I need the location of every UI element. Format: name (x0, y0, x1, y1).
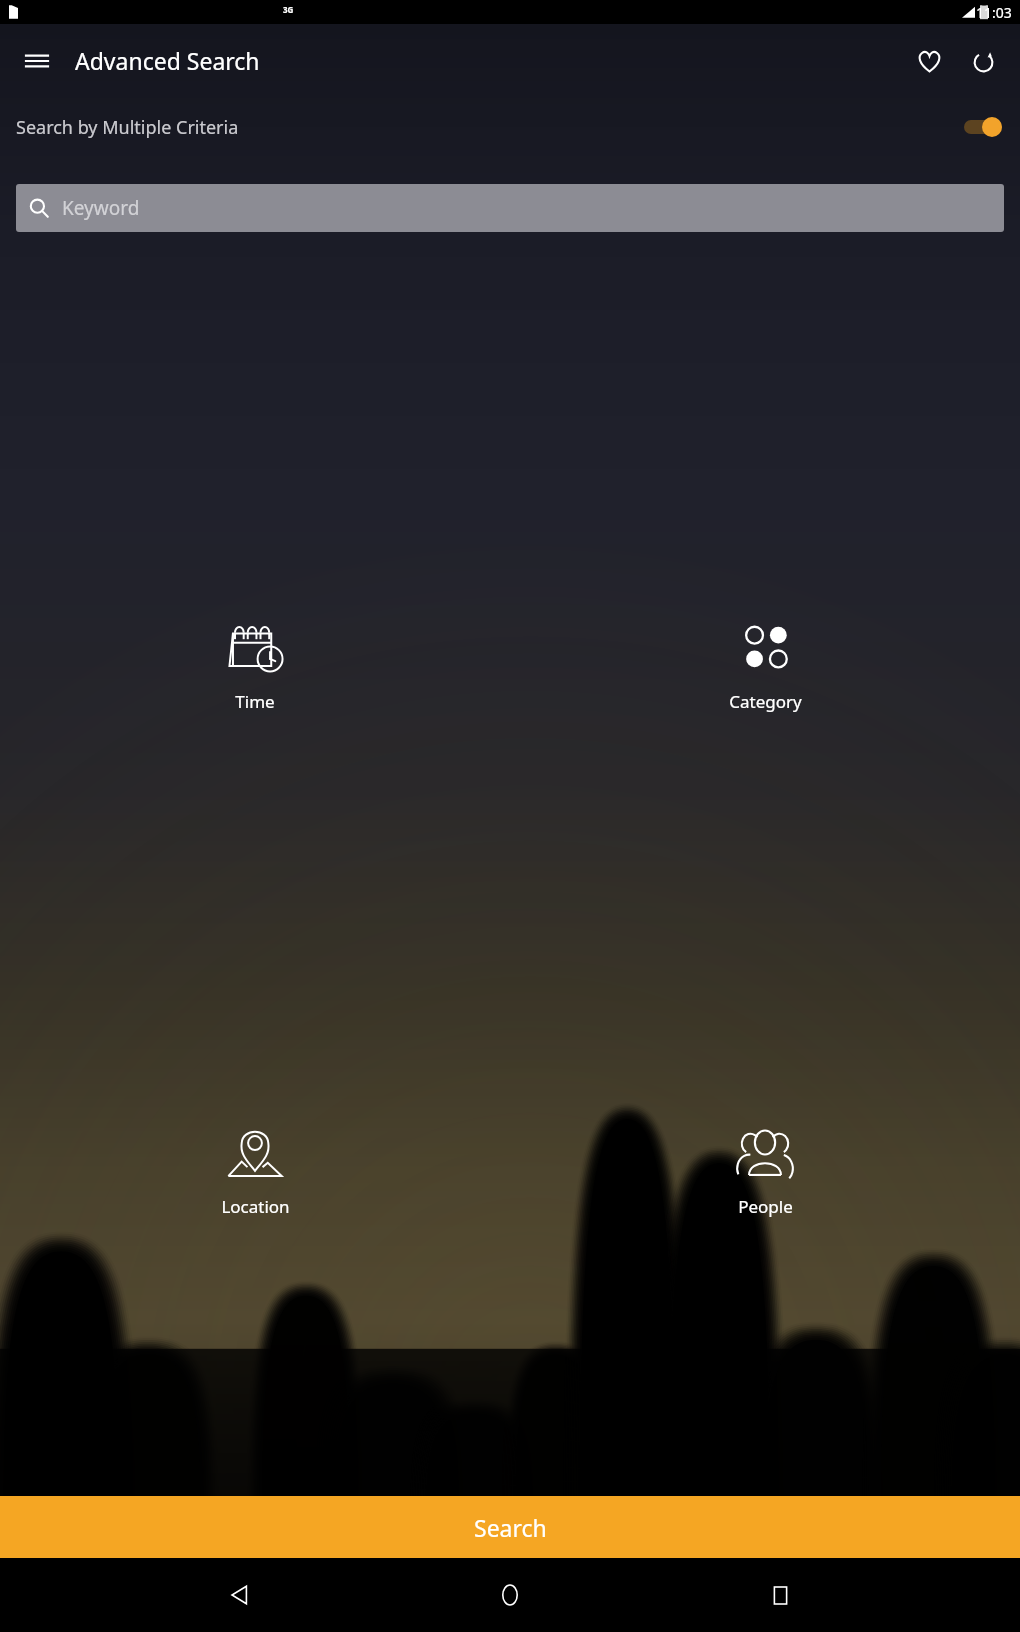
button[interactable]: Location (0, 1115, 510, 1224)
button[interactable]: Keyword (16, 184, 1004, 232)
button[interactable]: Category (510, 610, 1020, 719)
staticText: Advanced Search (75, 45, 260, 76)
staticText: People (738, 1195, 793, 1218)
button[interactable]: Back (210, 1565, 270, 1625)
staticText: Search (474, 1512, 547, 1543)
staticText: Keyword (62, 195, 140, 221)
staticText: 11:03 (976, 3, 1012, 22)
button[interactable]: Recents (750, 1565, 810, 1625)
button[interactable]: Home (480, 1565, 540, 1625)
staticText: 3G (283, 4, 294, 15)
staticText: Location (221, 1195, 290, 1218)
button[interactable]: Refresh (959, 37, 1007, 85)
button[interactable]: Time (0, 610, 510, 719)
button[interactable]: People (510, 1115, 1020, 1224)
button[interactable]: Search by Multiple Criteria (0, 97, 1020, 157)
button[interactable]: Menu (13, 37, 61, 85)
button[interactable]: Search (0, 1496, 1020, 1558)
staticText: Time (235, 690, 275, 713)
staticText: Search by Multiple Criteria (16, 115, 239, 140)
staticText: Category (729, 690, 802, 713)
button[interactable]: Favorite (905, 37, 953, 85)
